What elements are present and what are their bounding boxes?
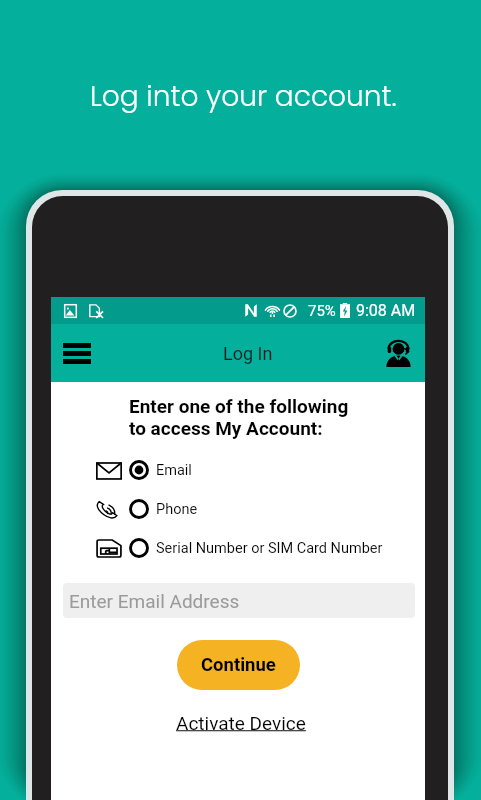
button[interactable]: Enter Email Address [63, 583, 415, 618]
button[interactable]: Continue [177, 640, 300, 690]
staticText: Log In [223, 343, 273, 364]
staticText: 9:08 AM [356, 301, 416, 320]
staticText: Serial Number or SIM Card Number [156, 540, 383, 557]
button[interactable]: Phone [51, 496, 425, 522]
button[interactable]: Serial Number or SIM Card Number [51, 535, 425, 561]
staticText: to access My Account: [129, 417, 323, 439]
staticText: Enter Email Address [69, 590, 240, 612]
staticText: Log into your account. [90, 77, 397, 116]
staticText: 75% [308, 302, 336, 320]
button[interactable]: Open navigation menu [53, 329, 101, 377]
button[interactable]: Activate Device [170, 709, 312, 737]
staticText: Continue [201, 654, 276, 676]
staticText: Enter one of the following [129, 395, 349, 417]
staticText: Email [156, 462, 192, 479]
staticText: Activate Device [176, 712, 306, 734]
button[interactable]: Contact support [374, 329, 422, 377]
staticText: Phone [156, 501, 198, 518]
button[interactable]: Email [51, 457, 425, 483]
